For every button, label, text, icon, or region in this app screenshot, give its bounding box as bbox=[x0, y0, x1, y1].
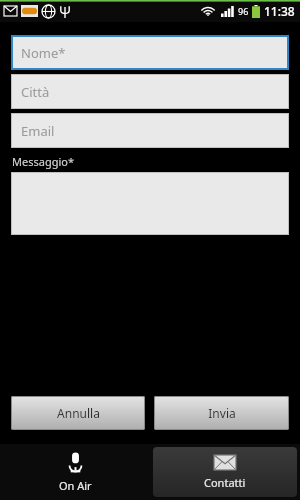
staticText: Nome* bbox=[21, 44, 66, 62]
button[interactable]: Contatti bbox=[153, 447, 297, 497]
other: On Air bbox=[68, 452, 83, 473]
button[interactable]: Nome* bbox=[11, 35, 289, 70]
staticText: Annulla bbox=[57, 405, 100, 421]
button[interactable] bbox=[11, 172, 289, 235]
button[interactable]: On Air bbox=[3, 447, 147, 497]
other: Contatti bbox=[214, 455, 236, 470]
button[interactable]: Città bbox=[11, 74, 289, 109]
staticText: 11:38 bbox=[264, 3, 295, 19]
staticText: Messaggio* bbox=[12, 154, 74, 169]
button[interactable]: Annulla bbox=[11, 396, 145, 430]
staticText: Città bbox=[21, 83, 50, 101]
staticText: Email bbox=[21, 122, 55, 140]
button[interactable]: Email bbox=[11, 113, 289, 148]
button[interactable]: Invia bbox=[154, 396, 289, 430]
staticText: On Air bbox=[59, 478, 92, 493]
staticText: 96 bbox=[238, 5, 249, 17]
staticText: Invia bbox=[208, 405, 236, 421]
staticText: Contatti bbox=[204, 475, 246, 490]
